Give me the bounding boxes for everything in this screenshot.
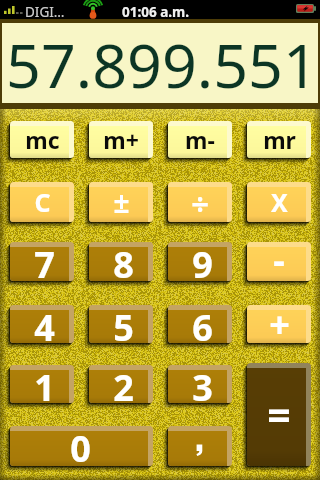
staticText: 57.899.551 [6,23,318,102]
button[interactable]: ÷ [168,182,232,222]
staticText: mc [25,124,60,155]
button[interactable]: X [247,182,311,222]
button[interactable]: 4 [10,305,74,343]
staticText: 2 [113,363,134,401]
button[interactable] [168,426,232,466]
button[interactable]: mc [10,121,74,158]
staticText: C [34,185,51,219]
staticText: ÷ [191,182,209,222]
staticText: - [273,235,285,274]
staticText: = [267,386,291,442]
button[interactable]: 7 [10,242,74,281]
staticText: 6 [192,303,213,341]
staticText: 9 [192,240,213,279]
button[interactable]: 3 [168,365,232,403]
staticText: 01:06 a.m. [122,3,190,21]
button[interactable]: C [10,182,74,222]
staticText: m- [185,124,215,155]
staticText: 3 [192,363,213,401]
button[interactable]: 9 [168,242,232,281]
button[interactable]: m+ [89,121,153,158]
button[interactable]: ± [89,182,153,222]
button[interactable]: 2 [89,365,153,403]
button[interactable]: 0 [10,426,153,466]
staticText: ± [113,183,130,221]
button[interactable]: 8 [89,242,153,281]
button[interactable]: - [247,242,311,281]
staticText: 4 [34,303,55,341]
staticText: X [271,185,288,219]
staticText: 0 [70,424,91,464]
staticText: 8 [113,240,134,279]
button[interactable]: = [247,363,311,466]
button[interactable]: 1 [10,365,74,403]
staticText: mr [263,124,296,155]
staticText: 1 [34,363,55,401]
button[interactable]: m- [168,121,232,158]
button[interactable]: mr [247,121,311,158]
staticText: 5 [113,303,134,341]
button[interactable]: 6 [168,305,232,343]
button[interactable]: 5 [89,305,153,343]
button[interactable]: + [247,305,311,343]
staticText: m+ [103,124,139,155]
staticText: 7 [34,240,55,279]
staticText: + [269,300,290,338]
staticText: DIGI… [25,3,65,21]
